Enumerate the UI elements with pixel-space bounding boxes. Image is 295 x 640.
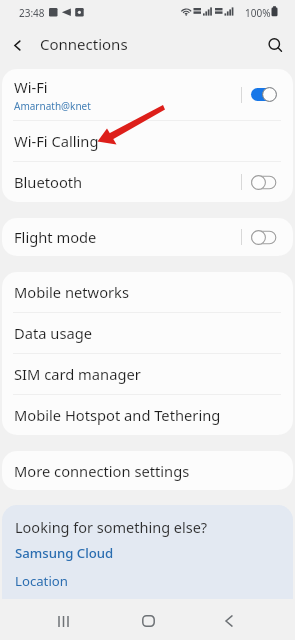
- staticText: Data usage: [14, 323, 92, 343]
- staticText: Looking for something else?: [15, 517, 208, 537]
- staticText: Amarnath@knet: [14, 99, 91, 113]
- button[interactable]: SIM card manager: [2, 354, 293, 394]
- button[interactable]: Search: [255, 24, 295, 66]
- staticText: SIM card manager: [14, 364, 141, 384]
- staticText: Connections: [40, 34, 128, 54]
- staticText: 100%: [245, 6, 271, 20]
- button[interactable]: On: [251, 87, 277, 102]
- staticText: Wi-Fi Calling: [14, 131, 99, 151]
- button[interactable]: Location: [15, 572, 68, 590]
- staticText: Bluetooth: [14, 172, 241, 192]
- button[interactable]: Wi-Fi Calling: [2, 121, 293, 161]
- button[interactable]: Home: [114, 602, 182, 640]
- button[interactable]: Bluetooth: [2, 162, 293, 202]
- button[interactable]: Mobile networks: [2, 272, 293, 312]
- staticText: 23:48: [19, 6, 45, 20]
- button[interactable]: Recent apps: [30, 602, 98, 640]
- button[interactable]: Data usage: [2, 313, 293, 353]
- button[interactable]: Off: [251, 175, 277, 190]
- button[interactable]: Android Auto: [15, 600, 98, 618]
- staticText: More connection settings: [14, 461, 190, 481]
- button[interactable]: Flight mode: [2, 218, 293, 256]
- button[interactable]: Mobile Hotspot and Tethering: [2, 395, 293, 435]
- staticText: Wi-Fi: [14, 77, 48, 97]
- staticText: Mobile Hotspot and Tethering: [14, 405, 221, 425]
- button[interactable]: More connection settings: [2, 451, 293, 490]
- staticText: Mobile networks: [14, 282, 129, 302]
- button[interactable]: Navigate up: [0, 24, 34, 66]
- button[interactable]: Wi-Fi: [2, 69, 293, 120]
- staticText: Flight mode: [14, 227, 241, 247]
- button[interactable]: Off: [251, 230, 277, 245]
- button[interactable]: Samsung Cloud: [15, 544, 114, 562]
- button[interactable]: Back: [195, 602, 263, 640]
